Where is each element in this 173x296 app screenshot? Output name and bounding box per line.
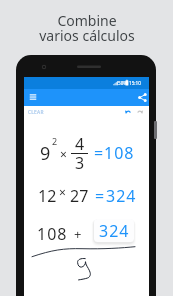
staticText: =	[94, 142, 104, 164]
staticText: Combine varios cálculos	[39, 11, 135, 45]
button[interactable]: Menu	[26, 89, 38, 106]
staticText: 58%	[118, 80, 128, 86]
staticText: 15:10	[129, 80, 141, 86]
button[interactable]: 324	[94, 219, 134, 242]
staticText: 324	[106, 185, 137, 207]
staticText: 324	[99, 220, 130, 242]
staticText: 12	[38, 185, 57, 207]
button[interactable]: Redo	[137, 107, 146, 116]
staticText: +	[74, 225, 82, 243]
staticText: ×	[60, 146, 67, 162]
staticText: 108	[104, 142, 135, 164]
button[interactable]: Share	[136, 89, 148, 106]
staticText: ×	[59, 184, 66, 200]
staticText: 4	[75, 133, 85, 155]
button[interactable]: CLEAR	[28, 106, 44, 118]
staticText: CLEAR	[28, 109, 44, 116]
button[interactable]: Undo	[124, 107, 133, 116]
staticText: 108	[37, 223, 68, 245]
staticText: 3	[75, 152, 85, 174]
staticText: 27	[70, 185, 89, 207]
staticText: 9	[40, 141, 51, 166]
staticText: 2	[52, 135, 58, 147]
staticText: =	[95, 185, 105, 207]
